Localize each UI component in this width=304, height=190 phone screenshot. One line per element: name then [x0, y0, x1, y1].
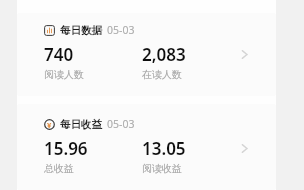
button[interactable]: ¥	[17, 104, 276, 190]
staticText: 05-03	[107, 23, 135, 37]
other: View details	[239, 49, 250, 60]
staticText: 总收益	[44, 162, 74, 175]
staticText: 每日数据	[60, 24, 102, 37]
staticText: 13.05	[142, 137, 186, 160]
staticText: 在读人数	[142, 68, 182, 81]
staticText: 15.96	[44, 137, 88, 160]
other: View details	[239, 143, 250, 154]
staticText: 740	[44, 43, 74, 66]
staticText: 05-03	[107, 117, 135, 131]
staticText: ¥	[47, 120, 52, 130]
staticText: 阅读收益	[142, 162, 182, 175]
button[interactable]: 每日数据	[17, 13, 276, 96]
staticText: 2,083	[142, 43, 186, 66]
staticText: 每日收益	[60, 118, 102, 131]
staticText: 阅读人数	[44, 68, 84, 81]
